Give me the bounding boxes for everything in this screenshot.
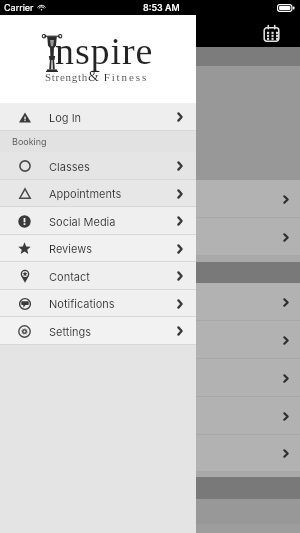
staticText: Settings (49, 325, 92, 338)
staticText: Appointments (49, 187, 122, 200)
button[interactable] (0, 283, 300, 321)
button[interactable] (0, 435, 300, 472)
button[interactable]: Reviews (0, 235, 196, 262)
staticText: Classes (49, 160, 90, 173)
button[interactable] (0, 218, 300, 256)
staticText: nspire (55, 30, 154, 72)
staticText: 8:53 AM (143, 2, 180, 13)
button[interactable]: Log In (0, 103, 196, 131)
button[interactable]: Classes (0, 152, 196, 180)
staticText: Strength (45, 71, 88, 83)
staticText: Notifications (49, 297, 115, 310)
button[interactable] (0, 359, 300, 397)
button[interactable] (0, 397, 300, 435)
staticText: & (88, 69, 99, 85)
button[interactable] (0, 180, 300, 218)
staticText: Booking (12, 136, 47, 147)
staticText: Contact (49, 270, 90, 283)
button[interactable]: Notifications (0, 290, 196, 317)
button[interactable]: Contact (0, 262, 196, 290)
button[interactable]: Settings (0, 317, 196, 345)
staticText: Log In (49, 111, 82, 124)
staticText: Carrier (4, 2, 34, 13)
staticText: Fitness (99, 71, 149, 83)
button[interactable]: Appointments (0, 180, 196, 207)
staticText: Reviews (49, 242, 92, 255)
button[interactable]: Calendar (258, 20, 284, 46)
staticText: Social Media (49, 215, 116, 228)
button[interactable] (0, 321, 300, 359)
button[interactable]: Social Media (0, 207, 196, 235)
